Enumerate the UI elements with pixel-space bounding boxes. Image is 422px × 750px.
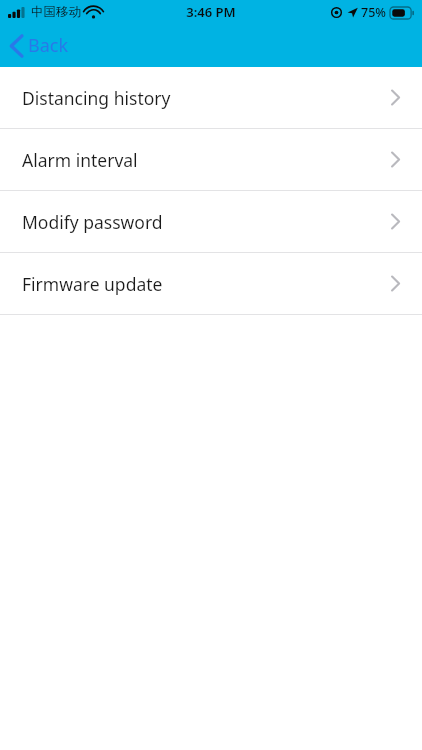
staticText: Modify password xyxy=(22,210,163,234)
staticText: Distancing history xyxy=(22,86,171,110)
button[interactable]: Modify password xyxy=(0,191,422,252)
staticText: 75% xyxy=(361,4,386,21)
button[interactable]: Back xyxy=(10,24,69,67)
staticText: Alarm interval xyxy=(22,148,138,172)
staticText: Firmware update xyxy=(22,272,163,296)
staticText: 3:46 PM xyxy=(186,3,236,21)
button[interactable]: Distancing history xyxy=(0,67,422,128)
button[interactable]: Firmware update xyxy=(0,253,422,314)
staticText: Back xyxy=(28,33,69,58)
staticText: 中国移动 xyxy=(31,4,81,20)
button[interactable]: Alarm interval xyxy=(0,129,422,190)
